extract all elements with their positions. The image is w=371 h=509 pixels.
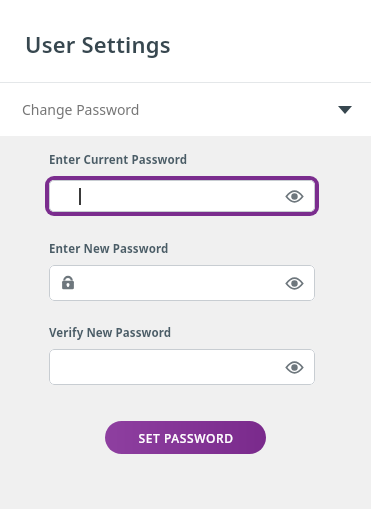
button[interactable]: Show password <box>49 349 315 385</box>
button[interactable]: Show password <box>45 176 319 216</box>
button[interactable]: Show password <box>49 265 315 301</box>
button[interactable]: SET PASSWORD <box>105 421 266 454</box>
button[interactable]: Show password <box>283 185 305 207</box>
staticText: Verify New Password <box>49 325 172 341</box>
button[interactable]: Change Password <box>0 83 371 136</box>
other: Expand section <box>335 100 355 120</box>
staticText: Change Password <box>22 100 140 119</box>
staticText: SET PASSWORD <box>138 430 234 446</box>
staticText: Enter New Password <box>49 241 169 257</box>
button[interactable]: Show password <box>283 272 305 294</box>
button[interactable]: Show password <box>283 356 305 378</box>
staticText: User Settings <box>25 29 171 59</box>
staticText: Enter Current Password <box>49 152 188 168</box>
